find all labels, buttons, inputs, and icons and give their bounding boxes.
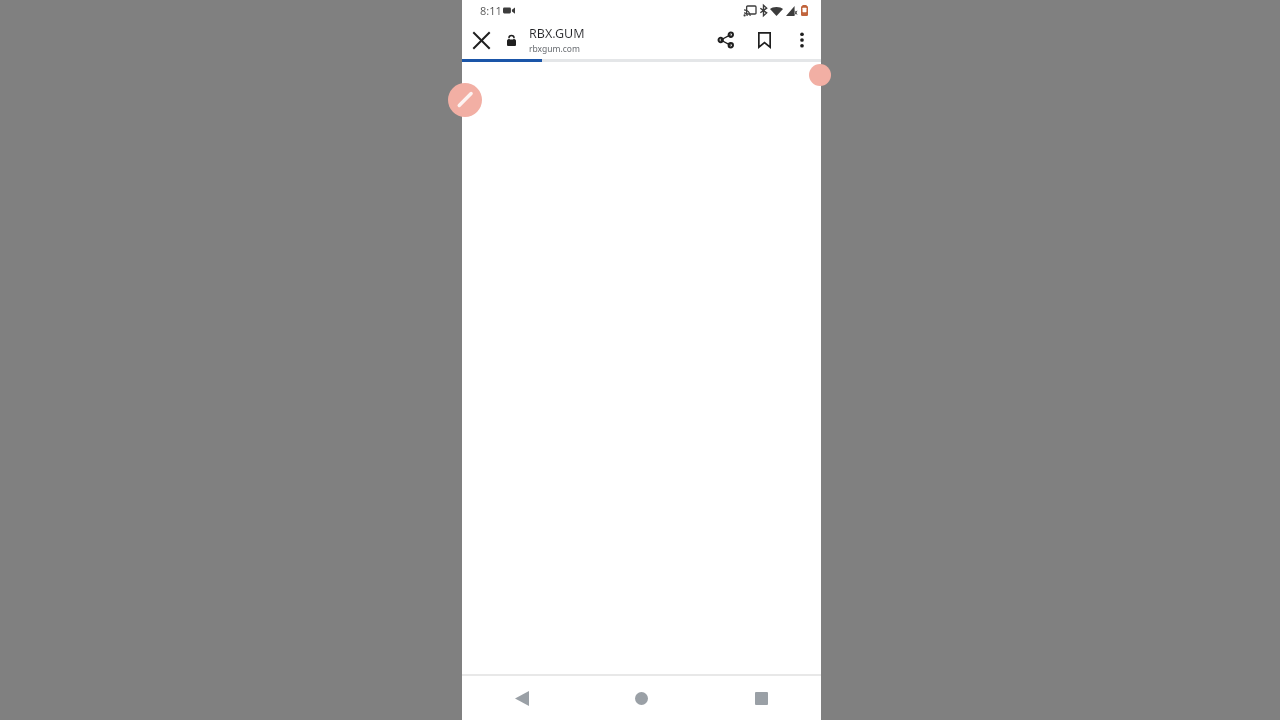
button[interactable]: Home [581,676,701,720]
button[interactable]: RBX.GUM [529,25,707,55]
button[interactable]: Back [462,676,581,720]
button[interactable]: Site information [500,29,522,51]
staticText: RBX.GUM [529,25,585,42]
button[interactable]: More options [783,21,821,59]
staticText: 8:11 [480,3,502,18]
staticText: rbxgum.com [529,43,580,55]
button[interactable]: Bookmark [745,21,783,59]
button[interactable]: Share [707,21,745,59]
button[interactable]: Recent apps [701,676,821,720]
button[interactable]: Close [462,21,500,59]
